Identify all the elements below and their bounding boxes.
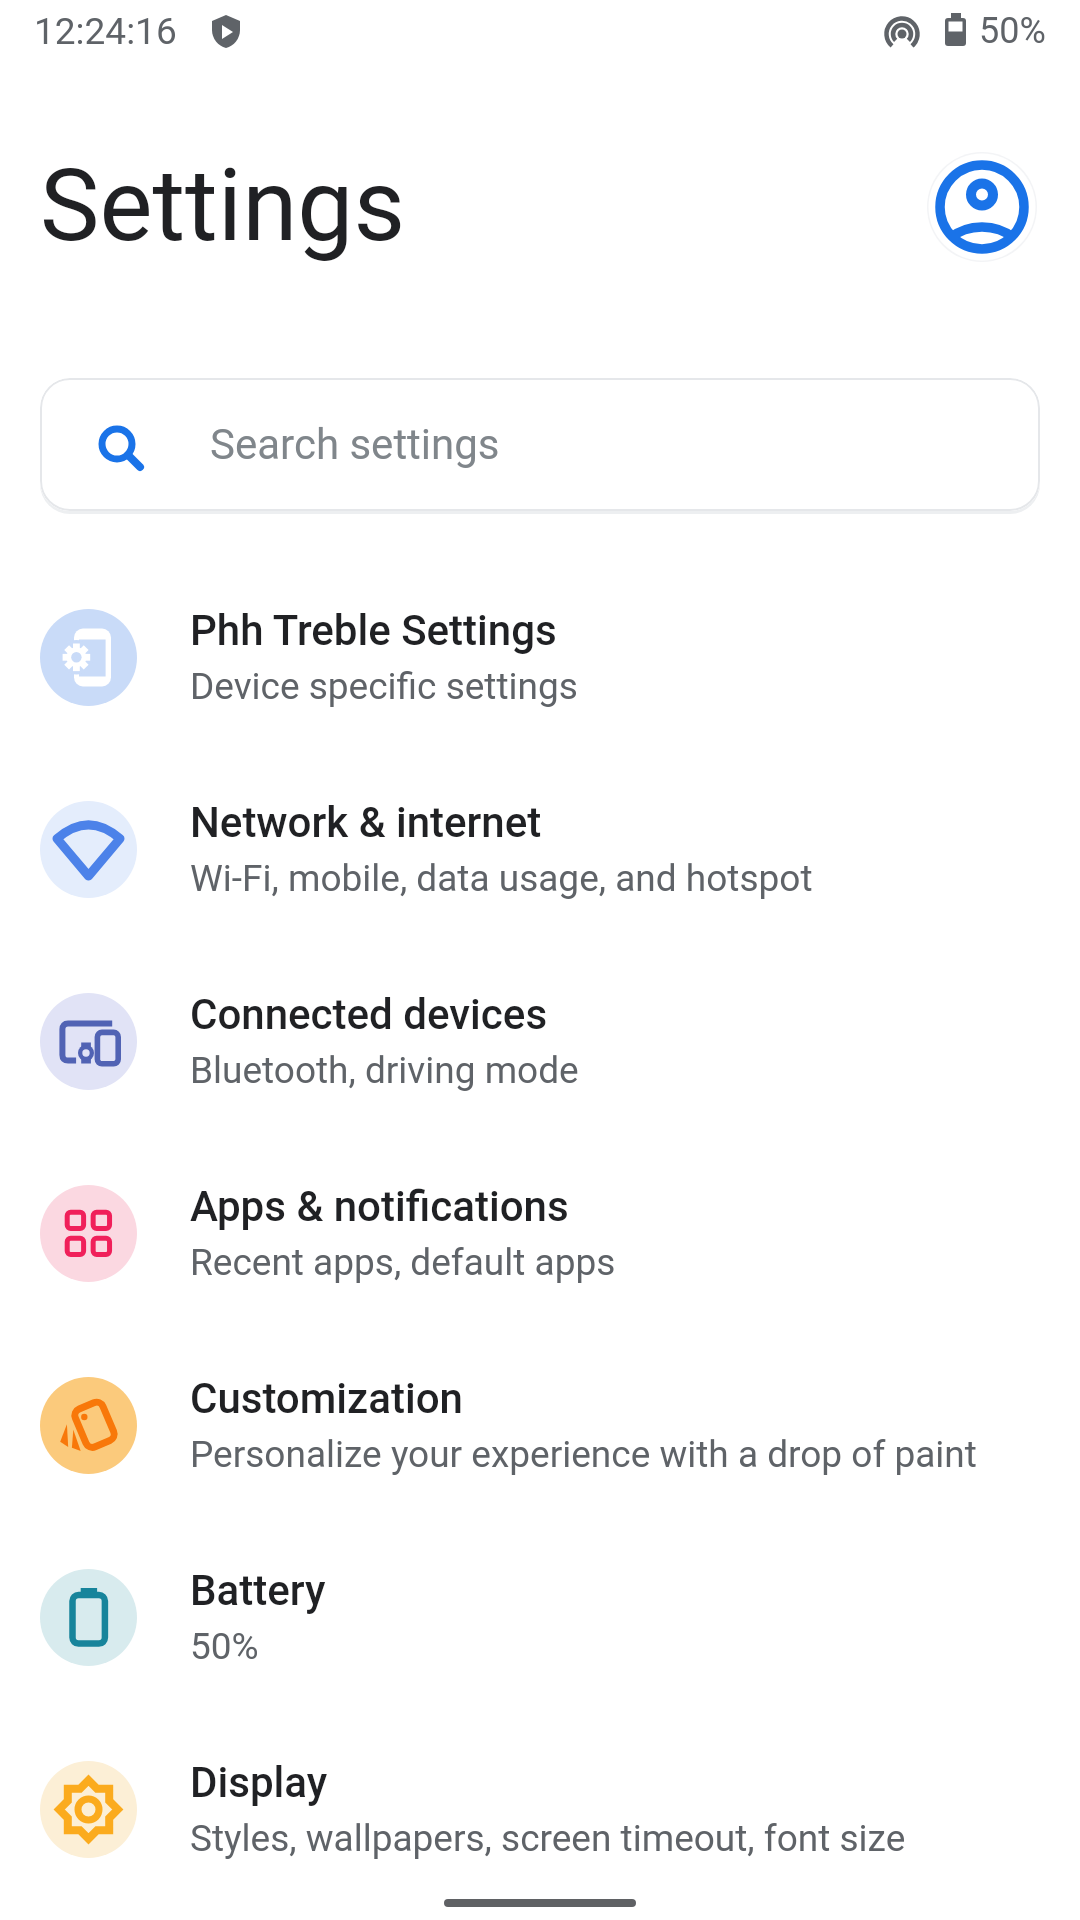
button[interactable]: Battery	[0, 1521, 1080, 1713]
button[interactable]: Customization	[0, 1329, 1080, 1521]
staticText: Bluetooth, driving mode	[190, 1049, 579, 1092]
staticText: 12:24:16	[34, 10, 177, 53]
staticText: Connected devices	[190, 990, 548, 1039]
staticText: Search settings	[210, 420, 500, 469]
button[interactable]: Connected devices	[0, 945, 1080, 1137]
staticText: Wi-Fi, mobile, data usage, and hotspot	[190, 857, 813, 900]
staticText: Battery	[190, 1566, 326, 1615]
button[interactable]: Display	[0, 1713, 1080, 1905]
button[interactable]: Network & internet	[0, 753, 1080, 945]
staticText: Recent apps, default apps	[190, 1241, 616, 1284]
button[interactable]: Search settings	[40, 378, 1040, 511]
staticText: Customization	[190, 1374, 463, 1423]
button[interactable]: Apps & notifications	[0, 1137, 1080, 1329]
button[interactable]	[927, 152, 1037, 262]
staticText: Display	[190, 1758, 328, 1807]
staticText: Apps & notifications	[190, 1182, 569, 1231]
button[interactable]: Phh Treble Settings	[0, 561, 1080, 753]
staticText: 50%	[190, 1625, 259, 1668]
staticText: Settings	[40, 147, 406, 264]
staticText: Personalize your experience with a drop …	[190, 1433, 977, 1476]
staticText: Phh Treble Settings	[190, 606, 557, 655]
staticText: Styles, wallpapers, screen timeout, font…	[190, 1817, 906, 1860]
staticText: 50%	[979, 10, 1046, 52]
staticText: Network & internet	[190, 798, 542, 847]
staticText: Device specific settings	[190, 665, 578, 708]
